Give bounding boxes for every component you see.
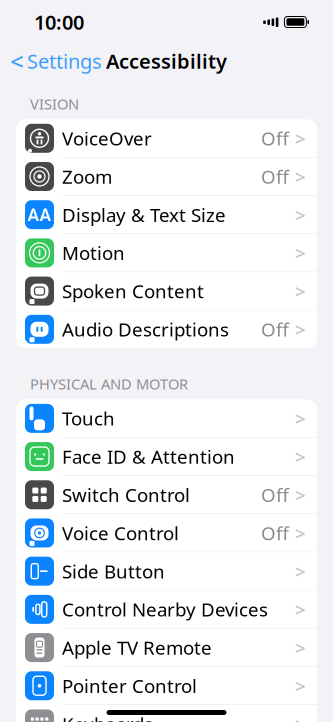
button[interactable]: Touch	[16, 400, 317, 438]
staticText: Off	[261, 126, 289, 151]
staticText: Apple TV Remote	[62, 635, 212, 660]
staticText: >	[295, 597, 306, 622]
staticText: Settings	[27, 48, 102, 74]
staticText: Zoom	[62, 164, 112, 189]
button[interactable]: VoiceOver	[16, 119, 317, 158]
button[interactable]: Pointer Control	[16, 667, 317, 705]
staticText: >	[295, 126, 306, 151]
staticText: Display & Text Size	[62, 202, 226, 227]
staticText: Switch Control	[62, 482, 190, 507]
button[interactable]: <	[0, 39, 102, 83]
staticText: >	[295, 521, 306, 545]
staticText: >	[295, 444, 306, 469]
button[interactable]: Voice Control	[16, 514, 317, 552]
button[interactable]: Zoom	[16, 158, 317, 196]
staticText: Off	[261, 317, 289, 342]
staticText: >	[295, 482, 306, 507]
staticText: Spoken Content	[62, 279, 204, 303]
staticText: Touch	[62, 406, 115, 431]
staticText: >	[295, 240, 306, 265]
staticText: >	[295, 279, 306, 303]
staticText: Off	[261, 164, 289, 189]
button[interactable]: AA	[16, 196, 317, 234]
staticText: >	[295, 635, 306, 660]
button[interactable]: Audio Descriptions	[16, 310, 317, 348]
staticText: Pointer Control	[62, 673, 197, 698]
staticText: Motion	[62, 240, 125, 265]
button[interactable]: Face ID & Attention	[16, 438, 317, 476]
staticText: Side Button	[62, 559, 165, 584]
staticText: Audio Descriptions	[62, 317, 229, 342]
staticText: >	[295, 406, 306, 431]
staticText: Voice Control	[62, 521, 179, 545]
staticText: >	[295, 317, 306, 342]
staticText: Off	[261, 482, 289, 507]
staticText: <	[10, 45, 24, 77]
staticText: Face ID & Attention	[62, 444, 235, 469]
staticText: PHYSICAL AND MOTOR	[30, 374, 188, 394]
button[interactable]: Spoken Content	[16, 272, 317, 310]
staticText: >	[295, 673, 306, 698]
button[interactable]: Control Nearby Devices	[16, 591, 317, 629]
button[interactable]: Apple TV Remote	[16, 629, 317, 667]
staticText: Accessibility	[106, 48, 227, 74]
button[interactable]: Side Button	[16, 552, 317, 591]
staticText: >	[295, 712, 306, 722]
staticText: >	[295, 202, 306, 227]
staticText: >	[295, 559, 306, 584]
button[interactable]: Keyboards	[16, 705, 317, 722]
staticText: Keyboards	[62, 712, 153, 722]
button[interactable]: Switch Control	[16, 476, 317, 514]
staticText: VISION	[30, 94, 79, 113]
staticText: >	[295, 164, 306, 189]
staticText: AA	[27, 203, 51, 226]
button[interactable]: Motion	[16, 234, 317, 272]
staticText: Control Nearby Devices	[62, 597, 268, 622]
staticText: VoiceOver	[62, 126, 152, 151]
staticText: Off	[261, 521, 289, 545]
staticText: 10:00	[34, 9, 84, 35]
